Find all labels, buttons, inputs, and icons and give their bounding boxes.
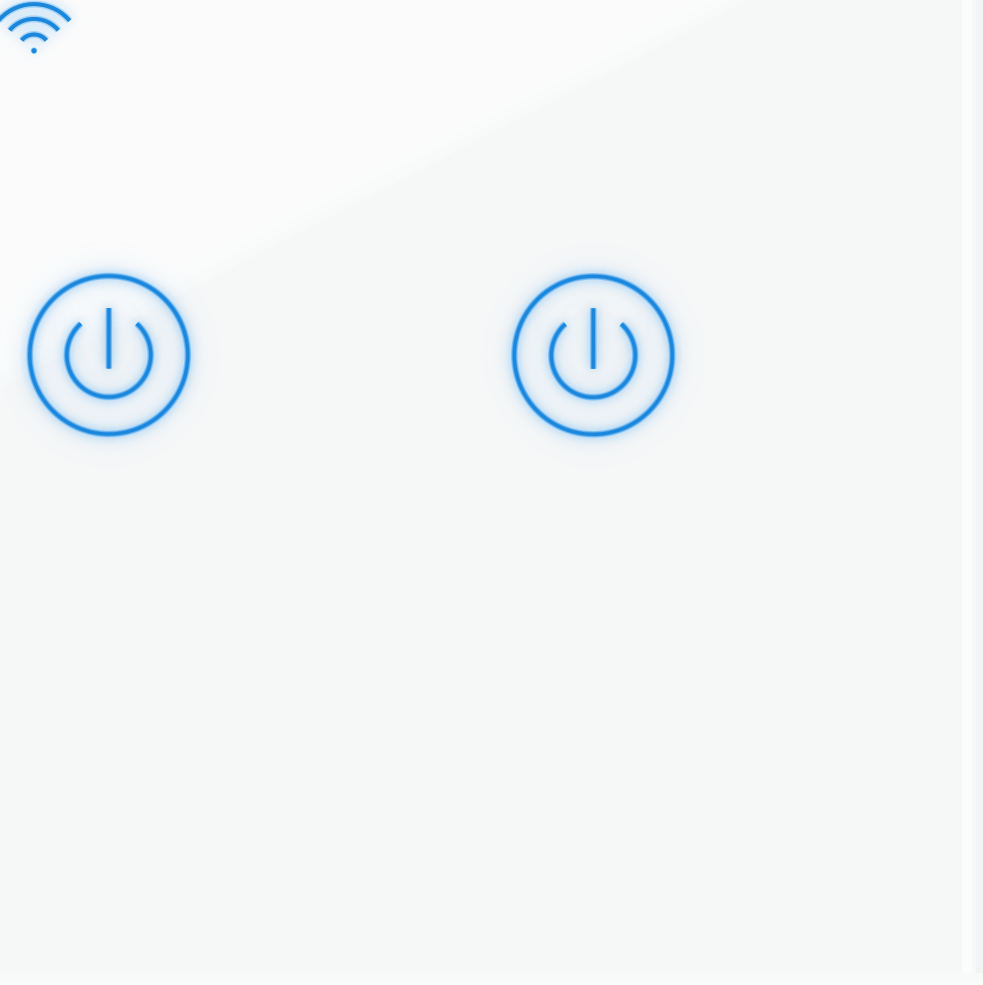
button[interactable]: Left switch power	[0, 240, 224, 470]
button[interactable]: Right switch power	[478, 240, 708, 470]
